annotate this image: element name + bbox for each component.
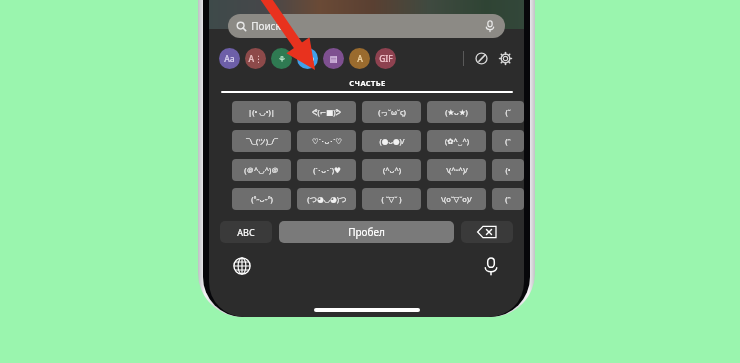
- staticText: ♡´･ᴗ･`♡: [312, 136, 342, 146]
- button[interactable]: (´･ᴗ･`)♥: [297, 159, 356, 181]
- button[interactable]: Stickers: [323, 48, 344, 69]
- staticText: ( ˘▽˘ ): [381, 194, 402, 204]
- button[interactable]: (ᐢ˶ᴗ˶ᐢ): [232, 188, 291, 210]
- button[interactable]: Text styles: [219, 48, 240, 69]
- button[interactable]: ♡´･ᴗ･`♡: [297, 130, 356, 152]
- button[interactable]: (ᵔ: [492, 130, 524, 152]
- staticText: (っ˘ω˘ς): [378, 107, 406, 117]
- staticText: ▤: [329, 54, 338, 64]
- button[interactable]: Delete: [461, 221, 513, 243]
- button[interactable]: Letters: [245, 48, 266, 69]
- button[interactable]: (っ˘ω˘ς): [362, 101, 421, 123]
- staticText: ⚘: [278, 54, 286, 64]
- staticText: A: [357, 53, 363, 65]
- staticText: (つ◕◡◕)つ: [307, 194, 347, 204]
- staticText: (★ᴗ★): [445, 107, 468, 117]
- button[interactable]: (^ᴗ^): [362, 159, 421, 181]
- button[interactable]: (•: [492, 159, 524, 181]
- button[interactable]: \(o˘▽˘o)/: [427, 188, 486, 210]
- staticText: (•∀•): [301, 55, 314, 62]
- staticText: (^ᴗ^): [383, 165, 401, 175]
- button[interactable]: (˘: [492, 101, 524, 123]
- button[interactable]: (✿^‿^): [427, 130, 486, 152]
- button[interactable]: Shapes: [271, 48, 292, 69]
- button[interactable]: (●ᴗ●)/: [362, 130, 421, 152]
- staticText: Пробел: [348, 225, 385, 239]
- staticText: ABC: [237, 226, 255, 238]
- button[interactable]: СЧАСТЬЕ: [221, 78, 513, 93]
- staticText: СЧАСТЬЕ: [349, 78, 386, 88]
- button[interactable]: Kaomoji: [297, 48, 318, 69]
- staticText: ¯\_(ツ)_/¯: [246, 136, 278, 146]
- button[interactable]: Switch keyboard: [231, 255, 253, 277]
- staticText: (●ᴗ●)/: [379, 136, 405, 146]
- staticText: Поиск: [251, 19, 281, 33]
- staticText: (˘: [505, 107, 511, 117]
- button[interactable]: ¯\_(ツ)_/¯: [232, 130, 291, 152]
- button[interactable]: Dictation: [480, 255, 502, 277]
- staticText: (ᵔ: [505, 136, 511, 146]
- staticText: \(o˘▽˘o)/: [441, 194, 472, 204]
- button[interactable]: ABC: [220, 221, 272, 243]
- staticText: (ᐢ˶ᴗ˶ᐢ): [251, 194, 273, 204]
- button[interactable]: Поиск: [228, 14, 505, 38]
- staticText: GIF: [379, 53, 393, 65]
- button[interactable]: GIF: [375, 48, 396, 69]
- staticText: |(• ◡•)|: [248, 107, 275, 117]
- button[interactable]: Edit: [473, 50, 490, 67]
- staticText: Aa: [224, 53, 235, 65]
- button[interactable]: Пробел: [279, 221, 454, 243]
- button[interactable]: (＠^◡^)＠: [232, 159, 291, 181]
- button[interactable]: Voice search: [483, 19, 497, 33]
- staticText: (ᵔ: [505, 194, 511, 204]
- button[interactable]: (ᵔ: [492, 188, 524, 210]
- staticText: (✿^‿^): [445, 136, 469, 146]
- button[interactable]: |(• ◡•)|: [232, 101, 291, 123]
- staticText: (•: [505, 165, 511, 175]
- button[interactable]: ( ˘▽˘ ): [362, 188, 421, 210]
- button[interactable]: Art: [349, 48, 370, 69]
- button[interactable]: (★ᴗ★): [427, 101, 486, 123]
- button[interactable]: ᕙ(⌐■)ᕗ: [297, 101, 356, 123]
- staticText: \(^ᵕ^)/: [446, 165, 468, 175]
- button[interactable]: \(^ᵕ^)/: [427, 159, 486, 181]
- staticText: (＠^◡^)＠: [244, 165, 279, 175]
- staticText: A⋮: [248, 53, 263, 65]
- button[interactable]: (つ◕◡◕)つ: [297, 188, 356, 210]
- staticText: ᕙ(⌐■)ᕗ: [312, 107, 341, 117]
- staticText: (´･ᴗ･`)♥: [313, 165, 341, 175]
- button[interactable]: Settings: [497, 50, 514, 67]
